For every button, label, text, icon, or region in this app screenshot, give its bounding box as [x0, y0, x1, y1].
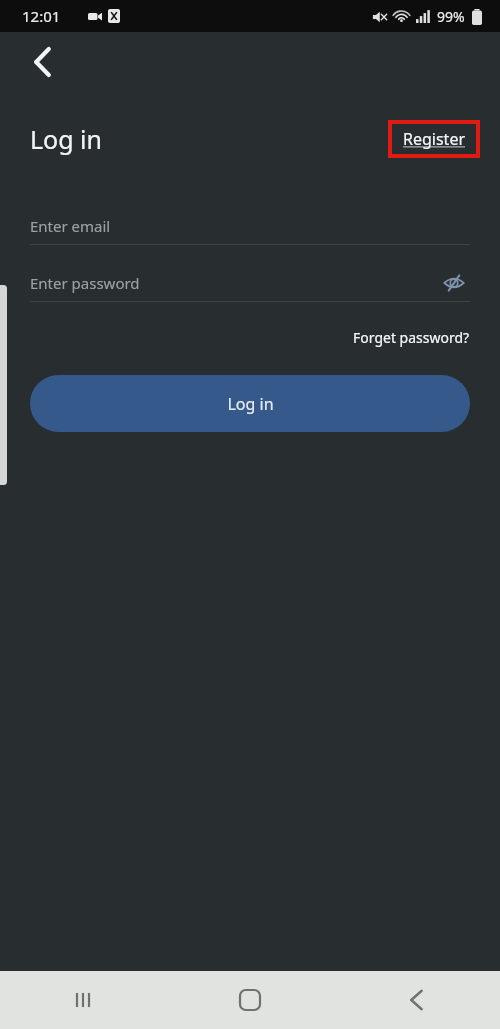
staticText: Log in	[227, 393, 274, 415]
staticText: Register	[403, 128, 466, 150]
button[interactable]: Recent apps	[0, 971, 166, 1029]
button[interactable]: Back	[20, 40, 64, 84]
button[interactable]: Register	[392, 124, 476, 154]
button[interactable]: Log in	[30, 375, 470, 432]
staticText: Enter password	[30, 273, 140, 293]
staticText: Enter email	[30, 216, 111, 236]
staticText: Forget password?	[353, 328, 470, 347]
staticText: Log in	[30, 122, 103, 156]
button[interactable]: Enter email	[30, 208, 470, 244]
staticText: 12:01	[22, 6, 61, 26]
button[interactable]: Show password	[438, 267, 470, 299]
button[interactable]: Forget password?	[349, 324, 474, 351]
button[interactable]: Home	[166, 971, 333, 1029]
button[interactable]: Back	[333, 971, 500, 1029]
staticText: 99%	[437, 7, 465, 26]
button[interactable]: Enter password	[30, 273, 438, 293]
